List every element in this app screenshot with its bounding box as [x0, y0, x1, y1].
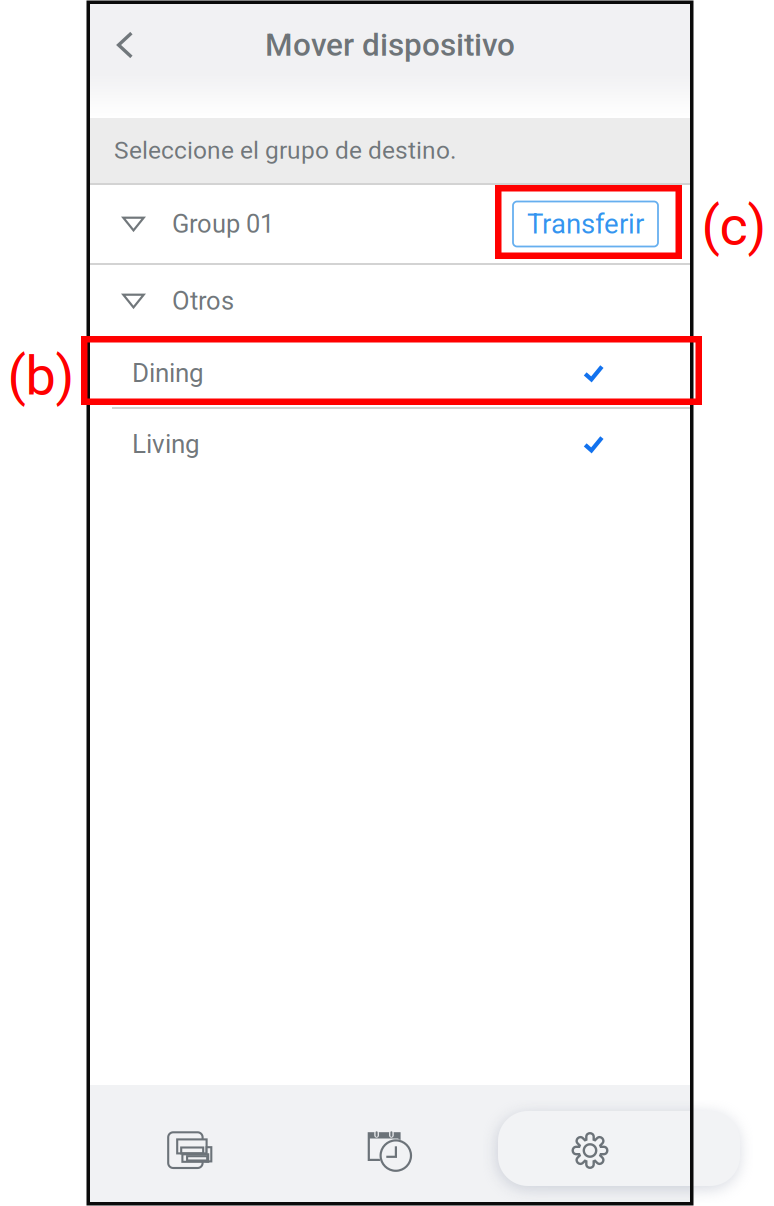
button[interactable]: Otros [90, 265, 690, 337]
staticText: Seleccione el grupo de destino. [114, 136, 456, 165]
staticText: (c) [701, 194, 766, 258]
staticText: (b) [7, 344, 74, 408]
button[interactable]: Back [94, 17, 156, 73]
staticText: Mover dispositivo [265, 26, 515, 63]
staticText: Dining [132, 358, 204, 388]
staticText: Otros [172, 286, 234, 316]
button[interactable]: Dining [90, 339, 690, 407]
button[interactable]: Devices [90, 1092, 290, 1206]
staticText: Transferir [527, 208, 644, 240]
button[interactable]: Schedule [290, 1092, 490, 1206]
button[interactable]: Group 01 [90, 185, 690, 263]
staticText: Living [132, 429, 200, 459]
button[interactable]: Settings [490, 1092, 690, 1206]
button[interactable]: Living [90, 409, 690, 479]
staticText: Group 01 [172, 209, 274, 239]
